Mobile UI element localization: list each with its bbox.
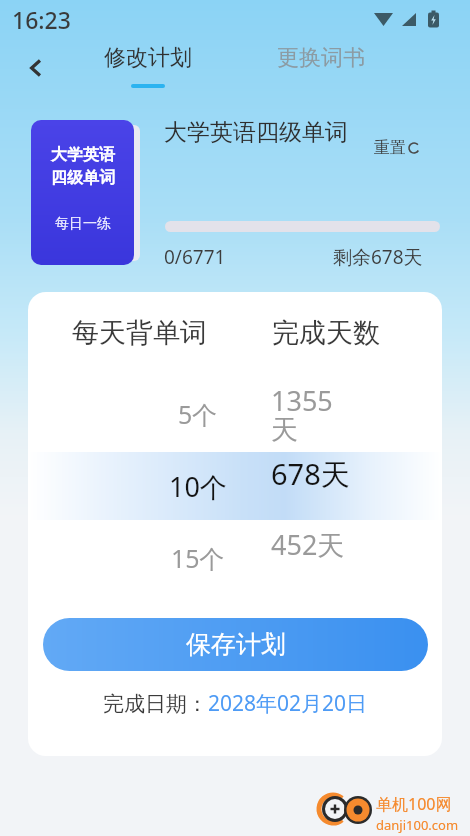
button[interactable]: 15个: [128, 524, 268, 592]
staticText: 单机100网: [376, 793, 452, 815]
button[interactable]: 452天: [271, 524, 356, 592]
staticText: 1355天: [271, 382, 356, 447]
button[interactable]: 1355天: [271, 380, 356, 448]
staticText: danji100.com: [376, 816, 459, 834]
button[interactable]: 678天: [271, 452, 356, 520]
staticText: 每天背单词: [72, 316, 207, 350]
staticText: 16:23: [12, 4, 71, 35]
staticText: 2028年02月20日: [208, 689, 368, 718]
staticText: 15个: [171, 541, 225, 575]
staticText: 重置: [374, 138, 406, 158]
button[interactable]: 5个: [128, 380, 268, 448]
staticText: 剩余678天: [333, 244, 423, 270]
button[interactable]: 保存计划: [43, 618, 428, 671]
staticText: 678天: [271, 454, 356, 494]
staticText: 452天: [271, 526, 356, 563]
staticText: 大学英语四级单词: [164, 118, 348, 147]
button[interactable]: 更换词书: [248, 38, 393, 94]
staticText: 保存计划: [186, 629, 286, 660]
button[interactable]: 10个: [128, 452, 268, 520]
staticText: 10个: [169, 468, 227, 505]
button[interactable]: 重置: [374, 138, 420, 158]
staticText: 0/6771: [164, 244, 226, 270]
staticText: 四级单词: [51, 168, 115, 188]
staticText: 完成天数: [272, 316, 380, 350]
staticText: 更换词书: [277, 44, 365, 72]
staticText: 修改计划: [104, 44, 192, 72]
staticText: 每日一练: [55, 215, 111, 233]
staticText: 大学英语: [51, 145, 115, 165]
button[interactable]: Back: [14, 46, 58, 90]
button[interactable]: 修改计划: [78, 38, 218, 94]
staticText: 5个: [178, 397, 218, 431]
button[interactable]: 大学英语: [31, 120, 134, 265]
staticText: 完成日期：: [103, 691, 208, 717]
